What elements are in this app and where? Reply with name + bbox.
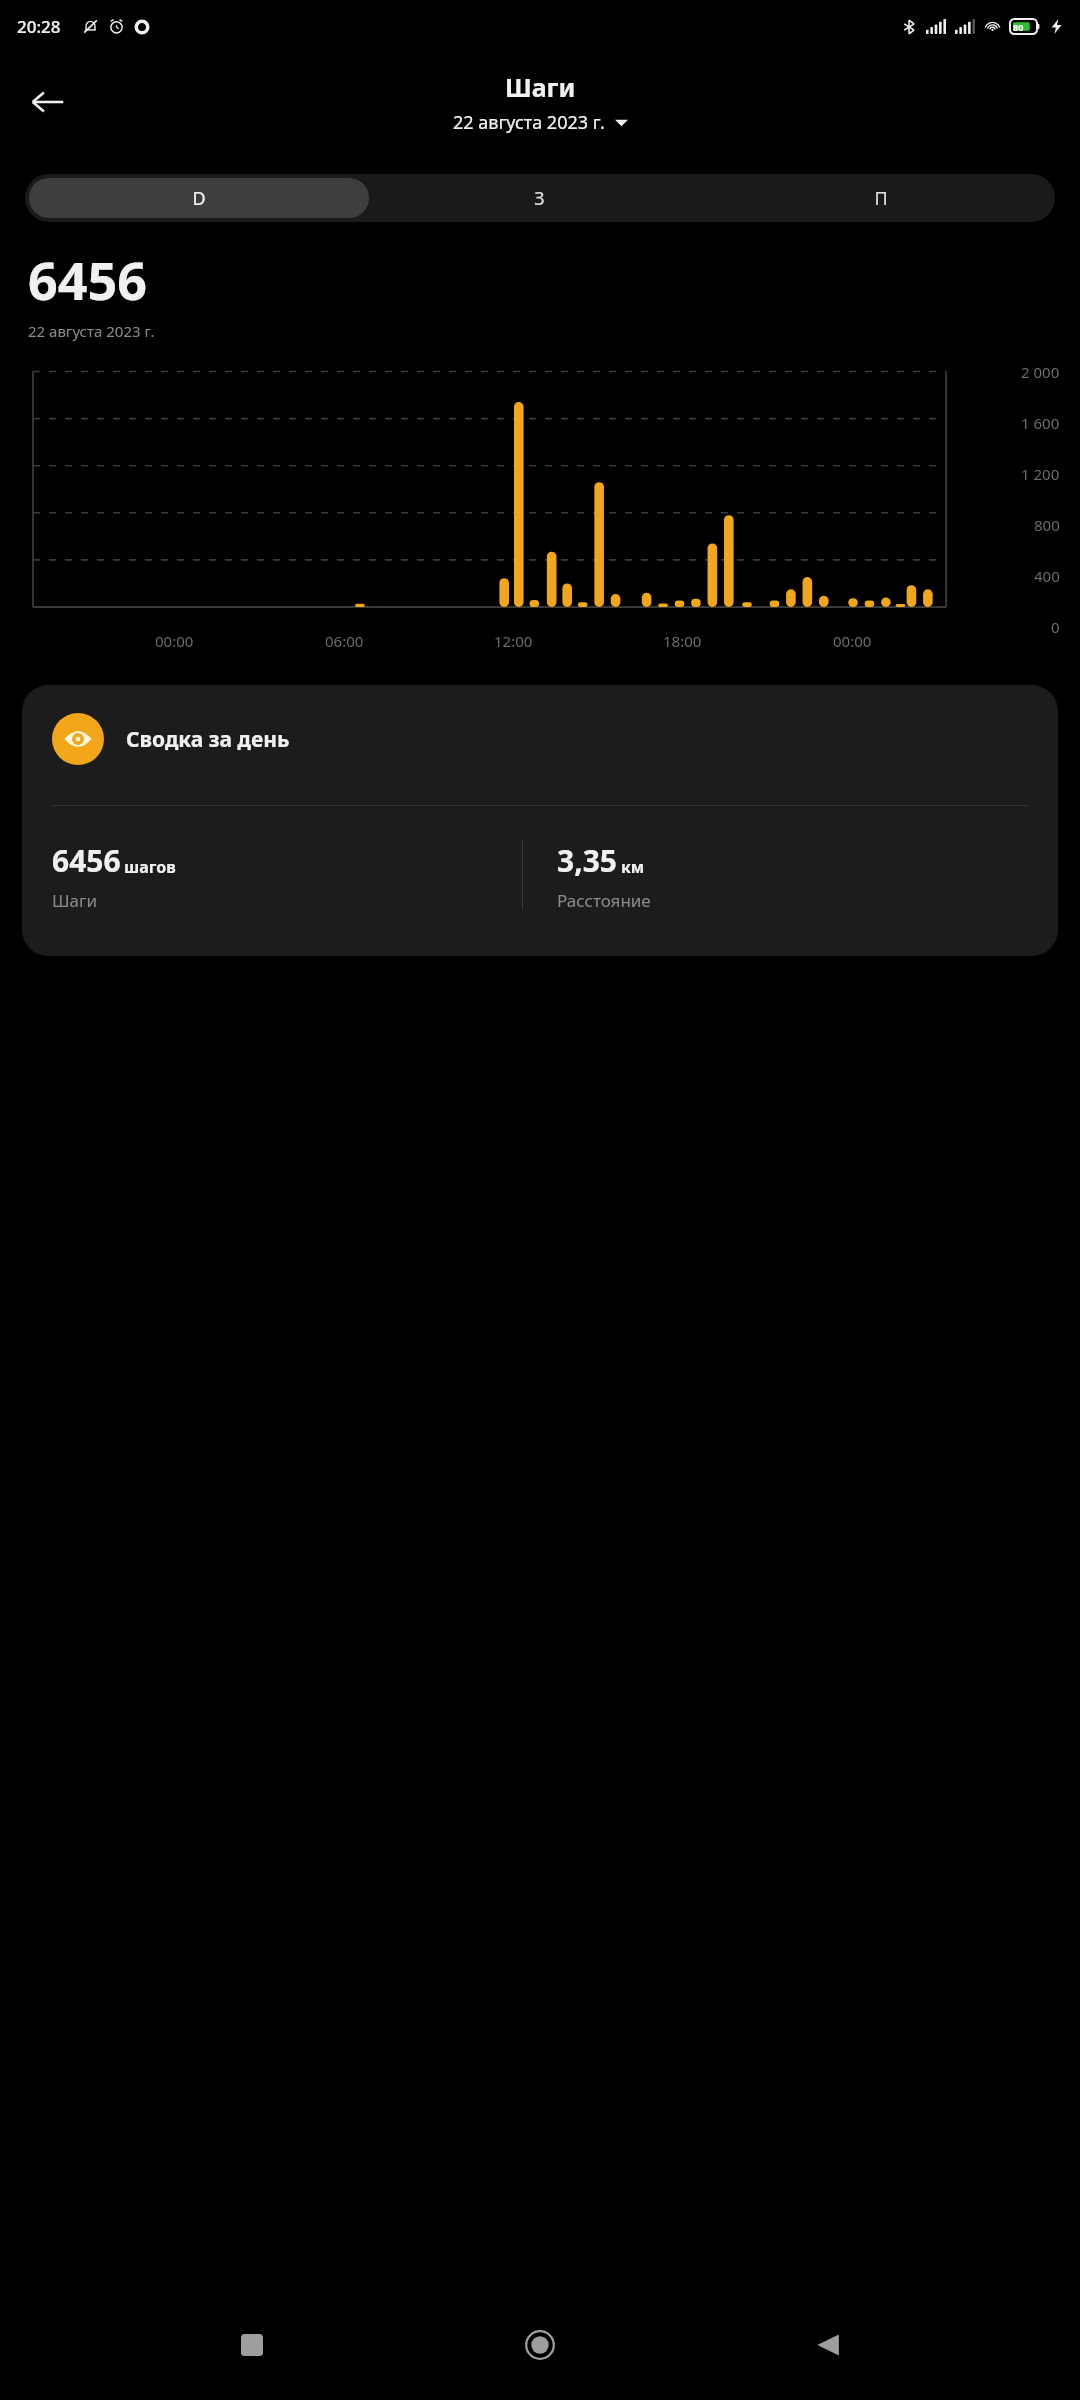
staticText: D	[192, 186, 206, 211]
staticText: 00:00	[833, 631, 872, 651]
staticText: Шаги	[505, 70, 576, 104]
staticText: 6456	[52, 840, 121, 881]
button[interactable]: Назад	[20, 74, 76, 130]
staticText: 800	[1034, 515, 1060, 535]
staticText: 22 августа 2023 г.	[453, 110, 605, 135]
staticText: З	[534, 186, 545, 211]
button[interactable]: Шаги	[453, 70, 628, 135]
staticText: 1 200	[1021, 464, 1060, 484]
staticText: Сводка за день	[126, 725, 290, 754]
staticText: 22 августа 2023 г.	[28, 321, 155, 341]
staticText: 06:00	[325, 631, 364, 651]
staticText: 80	[1013, 21, 1024, 33]
button[interactable]: П	[710, 178, 1051, 218]
staticText: 6456	[28, 244, 147, 315]
staticText: 3,35	[557, 840, 618, 881]
button[interactable]: Назад	[792, 2308, 866, 2382]
staticText: шагов	[124, 856, 176, 878]
button[interactable]: З	[369, 178, 710, 218]
staticText: 12:00	[494, 631, 533, 651]
staticText: 00:00	[155, 631, 194, 651]
staticText: 2 000	[1021, 362, 1060, 382]
button[interactable]: Обзор	[215, 2308, 289, 2382]
staticText: Шаги	[52, 889, 98, 912]
staticText: 20:28	[17, 15, 61, 38]
staticText: 18:00	[663, 631, 702, 651]
staticText: П	[874, 186, 888, 211]
button[interactable]: Главный экран	[503, 2308, 577, 2382]
button[interactable]: D	[29, 178, 369, 218]
staticText: 400	[1034, 566, 1060, 586]
staticText: км	[621, 856, 645, 878]
staticText: Расстояние	[557, 889, 651, 912]
staticText: 1 600	[1021, 413, 1060, 433]
staticText: 0	[1051, 617, 1060, 637]
button[interactable]: Сводка за день	[22, 685, 1058, 956]
